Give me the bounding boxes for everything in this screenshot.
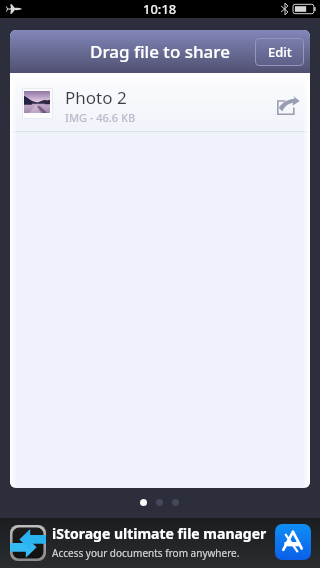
button[interactable]: iStorage ultimate file manager [0,518,320,568]
staticText: Photo 2 [65,86,127,109]
other: App Store [275,524,311,560]
button[interactable]: Share [270,86,304,120]
button[interactable]: Edit [255,38,304,66]
staticText: 10:18 [143,0,177,18]
staticText: iStorage ultimate file manager [52,524,267,543]
staticText: Edit [268,43,292,61]
staticText: Drag file to share [90,40,230,63]
staticText: IMG - 46.6 KB [65,110,136,125]
button[interactable]: Photo 2 [10,75,310,131]
staticText: Access your documents from anywhere. [52,546,240,560]
